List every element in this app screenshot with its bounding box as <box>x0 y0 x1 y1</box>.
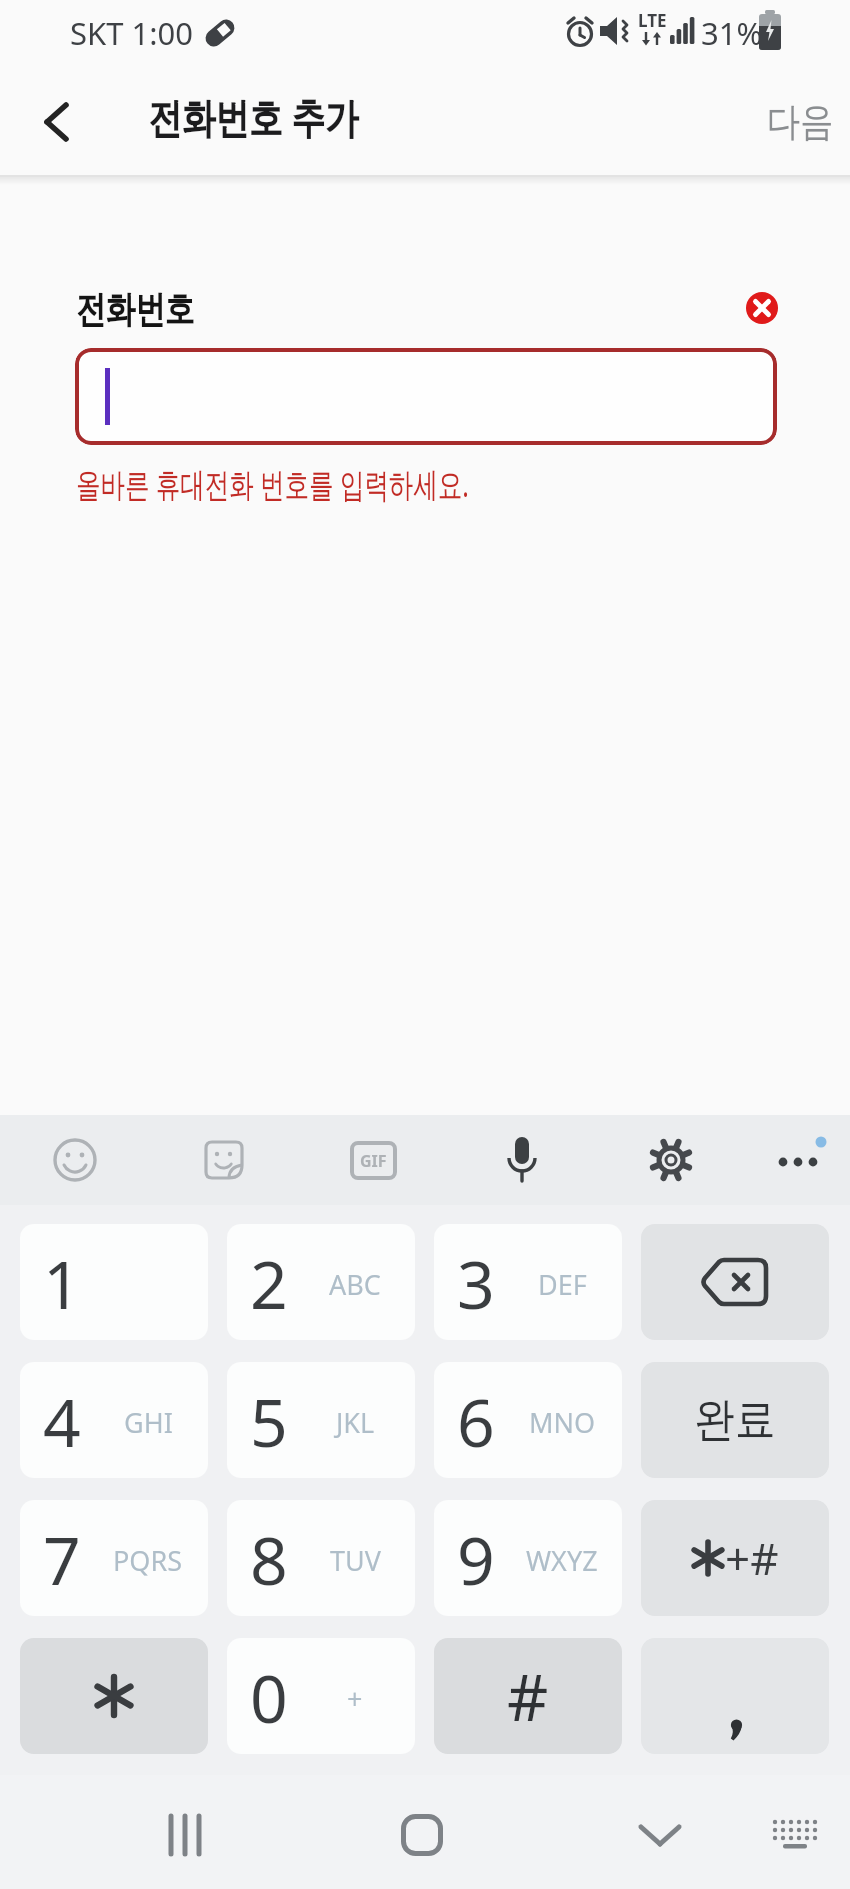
button[interactable] <box>620 1795 700 1875</box>
staticText: ABC <box>329 1266 381 1303</box>
button[interactable] <box>641 1638 829 1754</box>
button[interactable]: +# <box>641 1500 829 1616</box>
button[interactable]: GIF <box>343 1136 403 1184</box>
staticText: GHI <box>124 1404 173 1441</box>
staticText: 1 <box>43 1238 81 1328</box>
staticText: SKT 1:00 <box>70 12 194 54</box>
button[interactable]: 7 <box>20 1500 208 1616</box>
button[interactable]: 3 <box>434 1224 622 1340</box>
staticText: 8 <box>250 1514 288 1604</box>
staticText: 6 <box>457 1376 495 1466</box>
staticText: LTE <box>638 9 667 32</box>
button[interactable]: 다음 <box>750 88 850 154</box>
button[interactable]: 완료 <box>641 1362 829 1478</box>
staticText: # <box>507 1653 549 1740</box>
button[interactable] <box>382 1795 462 1875</box>
staticText: + <box>347 1680 363 1717</box>
staticText: 다음 <box>767 97 833 146</box>
button[interactable]: 8 <box>227 1500 415 1616</box>
button[interactable]: 2 <box>227 1224 415 1340</box>
staticText: 올바른 휴대전화 번호를 입력하세요. <box>76 461 469 507</box>
button[interactable]: 5 <box>227 1362 415 1478</box>
staticText: 3 <box>457 1238 495 1328</box>
button[interactable]: # <box>434 1638 622 1754</box>
staticText: 5 <box>250 1376 288 1466</box>
button[interactable] <box>768 1136 830 1184</box>
button[interactable]: 4 <box>20 1362 208 1478</box>
staticText: GIF <box>360 1150 387 1172</box>
button[interactable] <box>194 1136 254 1184</box>
staticText: 9 <box>457 1514 495 1604</box>
button[interactable] <box>45 1136 105 1184</box>
button[interactable] <box>75 348 777 445</box>
button[interactable]: 0 <box>227 1638 415 1754</box>
staticText: 4 <box>43 1376 81 1466</box>
staticText: JKL <box>336 1404 375 1441</box>
staticText: 31% <box>701 12 763 54</box>
button[interactable] <box>30 94 86 150</box>
button[interactable] <box>492 1136 552 1184</box>
staticText: DEF <box>538 1266 587 1303</box>
button[interactable] <box>145 1795 225 1875</box>
button[interactable] <box>20 1638 208 1754</box>
staticText: 0 <box>250 1652 288 1742</box>
staticText: MNO <box>529 1404 596 1441</box>
staticText: WXYZ <box>526 1542 598 1579</box>
button[interactable] <box>641 1136 701 1184</box>
button[interactable]: 6 <box>434 1362 622 1478</box>
button[interactable] <box>738 284 786 332</box>
button[interactable] <box>760 1800 830 1870</box>
staticText: 전화번호 <box>76 286 194 333</box>
button[interactable]: 1 <box>20 1224 208 1340</box>
button[interactable] <box>641 1224 829 1340</box>
button[interactable]: 9 <box>434 1500 622 1616</box>
staticText: TUV <box>330 1542 381 1579</box>
staticText: +# <box>725 1528 779 1588</box>
staticText: 2 <box>250 1238 288 1328</box>
staticText: PQRS <box>113 1542 183 1579</box>
staticText: 완료 <box>694 1391 775 1449</box>
staticText: 전화번호 추가 <box>148 88 358 145</box>
staticText: 7 <box>43 1514 81 1604</box>
